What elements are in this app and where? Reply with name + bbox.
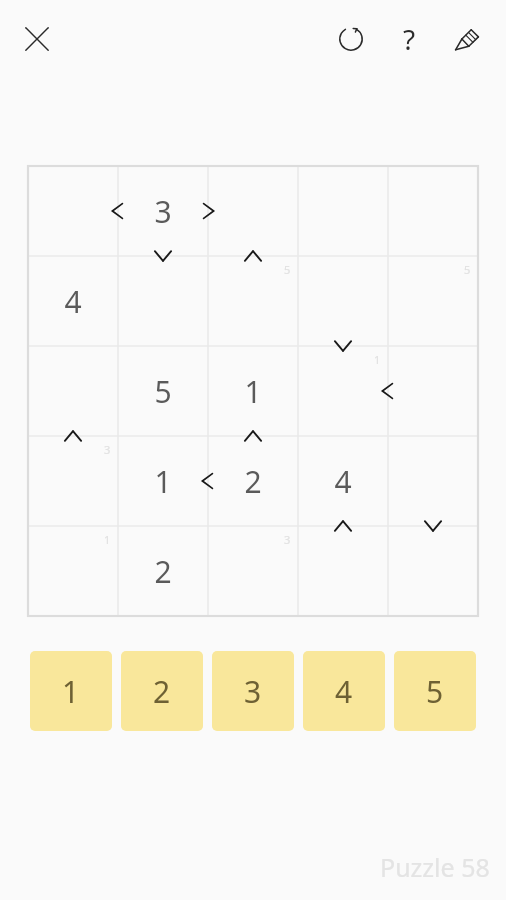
button[interactable]: Pencil marks: [440, 12, 494, 66]
button[interactable]: 2: [118, 526, 208, 616]
staticText: ?: [403, 20, 416, 58]
button[interactable]: Close: [10, 12, 64, 66]
staticText: 5: [154, 371, 172, 412]
staticText: 5: [284, 262, 291, 277]
staticText: 1: [154, 461, 172, 502]
staticText: Puzzle 58: [380, 850, 490, 884]
button[interactable]: 3: [118, 166, 208, 256]
staticText: 5: [464, 262, 471, 277]
button[interactable]: Restart: [324, 12, 378, 66]
staticText: 1: [62, 671, 80, 712]
button[interactable]: 1: [208, 346, 298, 436]
staticText: 5: [426, 671, 444, 712]
button[interactable]: 2: [121, 651, 203, 731]
button[interactable]: 1: [118, 436, 208, 526]
button[interactable]: 4: [298, 436, 388, 526]
button[interactable]: Help: [382, 12, 436, 66]
staticText: 1: [374, 352, 381, 367]
button[interactable]: 1: [30, 651, 112, 731]
staticText: 3: [284, 532, 291, 547]
button[interactable]: 2: [208, 436, 298, 526]
staticText: 4: [335, 671, 353, 712]
button[interactable]: 4: [28, 256, 118, 346]
button[interactable]: 5: [118, 346, 208, 436]
staticText: 3: [104, 442, 111, 457]
staticText: 2: [153, 671, 171, 712]
staticText: 3: [154, 191, 172, 232]
staticText: 4: [64, 281, 82, 322]
staticText: 2: [244, 461, 262, 502]
staticText: 1: [244, 371, 262, 412]
staticText: 2: [154, 551, 172, 592]
button[interactable]: 4: [303, 651, 385, 731]
button[interactable]: 5: [394, 651, 476, 731]
staticText: 1: [104, 532, 111, 547]
staticText: 4: [334, 461, 352, 502]
staticText: 3: [244, 671, 262, 712]
button[interactable]: 3: [212, 651, 294, 731]
